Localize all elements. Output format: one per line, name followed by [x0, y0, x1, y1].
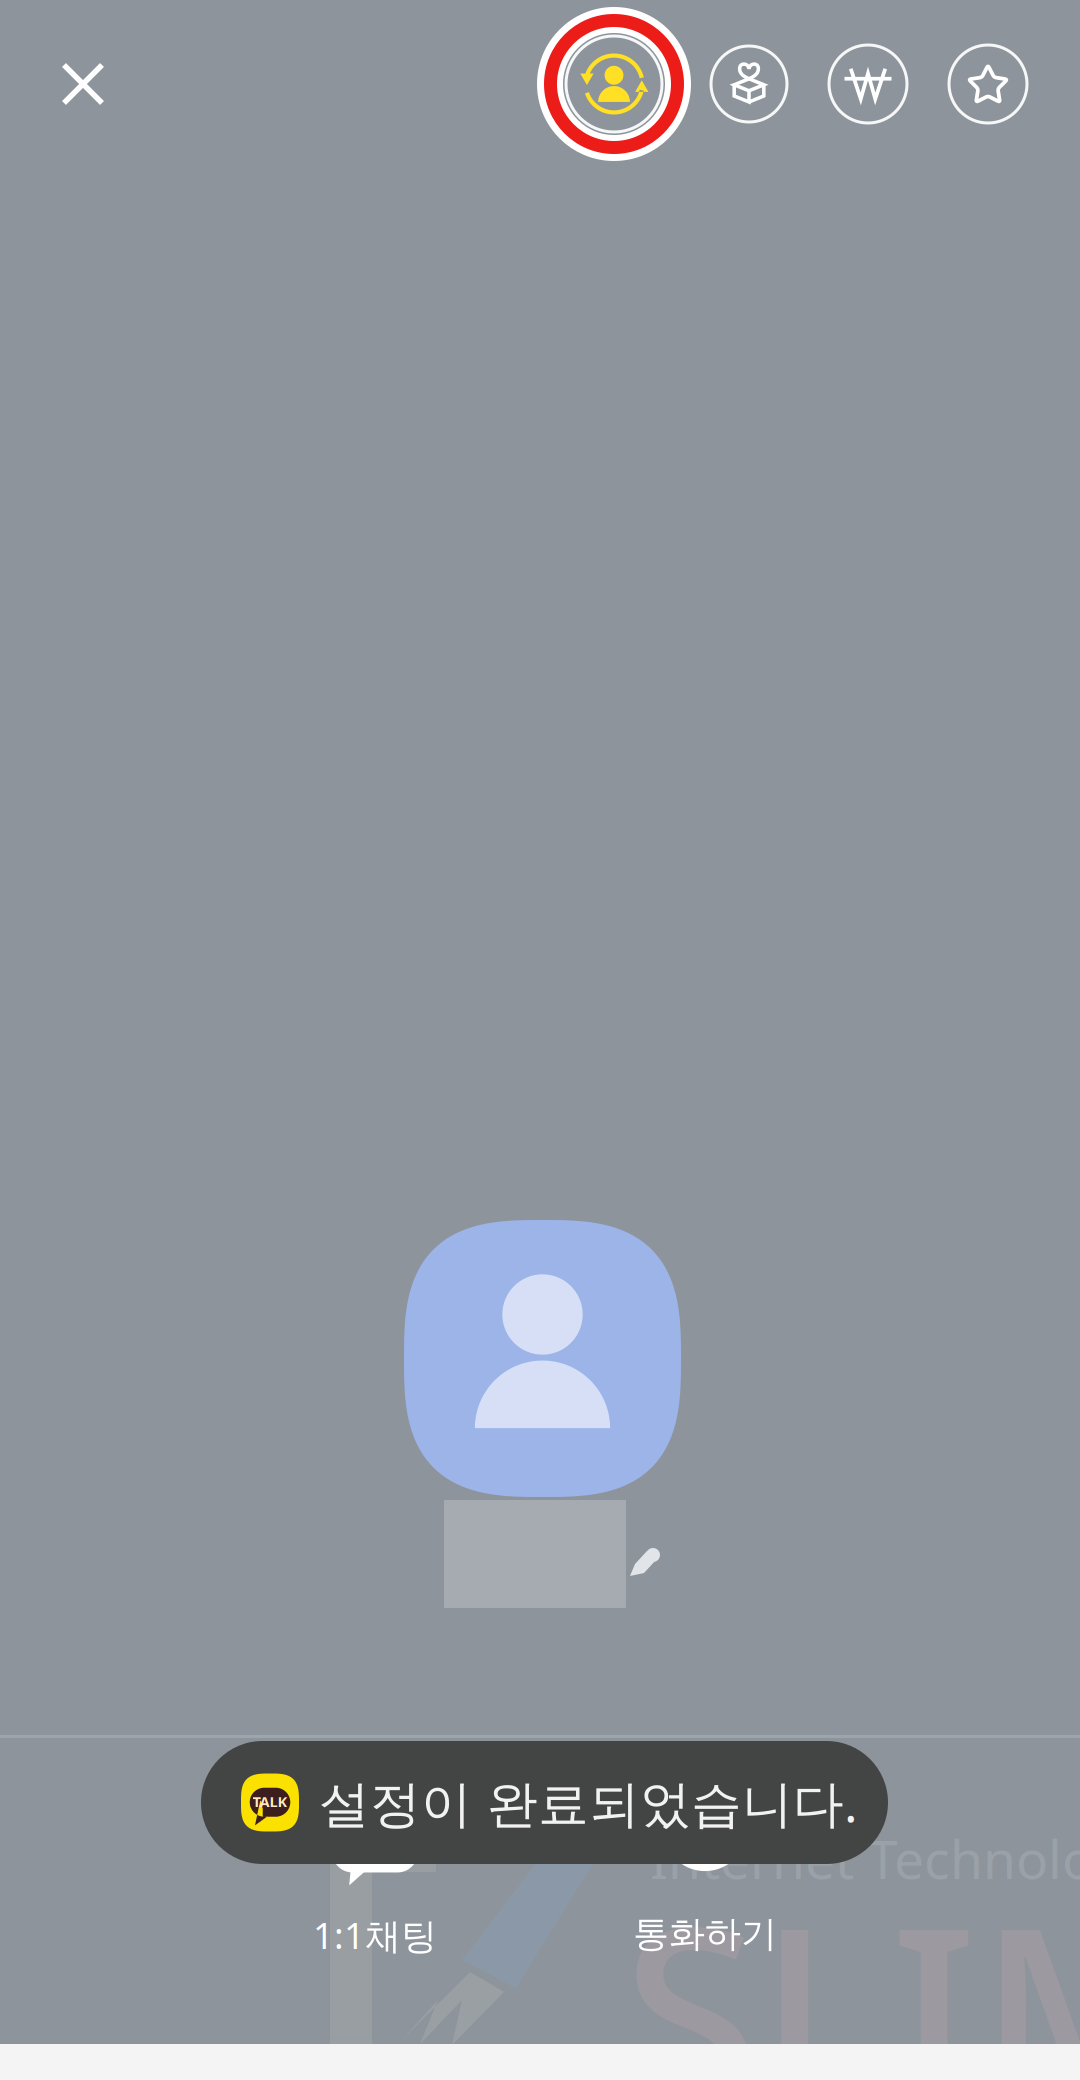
button[interactable]: 1:1채팅 — [210, 1794, 540, 1966]
staticText: SLIM — [622, 1846, 1080, 2080]
staticText: TALK — [252, 1792, 287, 1811]
staticText: Internet Technology — [650, 1823, 1080, 1894]
staticText: 1:1채팅 — [313, 1911, 437, 1959]
button[interactable]: Switch profile — [566, 36, 662, 132]
button[interactable]: Send money — [829, 45, 907, 123]
button[interactable]: Favorites — [949, 45, 1027, 123]
button[interactable]: Gift — [711, 46, 787, 122]
button[interactable]: Close — [33, 34, 133, 134]
staticText: 설정이 완료되었습니다. — [319, 1769, 858, 1836]
staticText: 통화하기 — [633, 1912, 777, 1956]
button[interactable]: 통화하기 — [540, 1794, 870, 1966]
button[interactable]: Edit name — [613, 1524, 679, 1596]
